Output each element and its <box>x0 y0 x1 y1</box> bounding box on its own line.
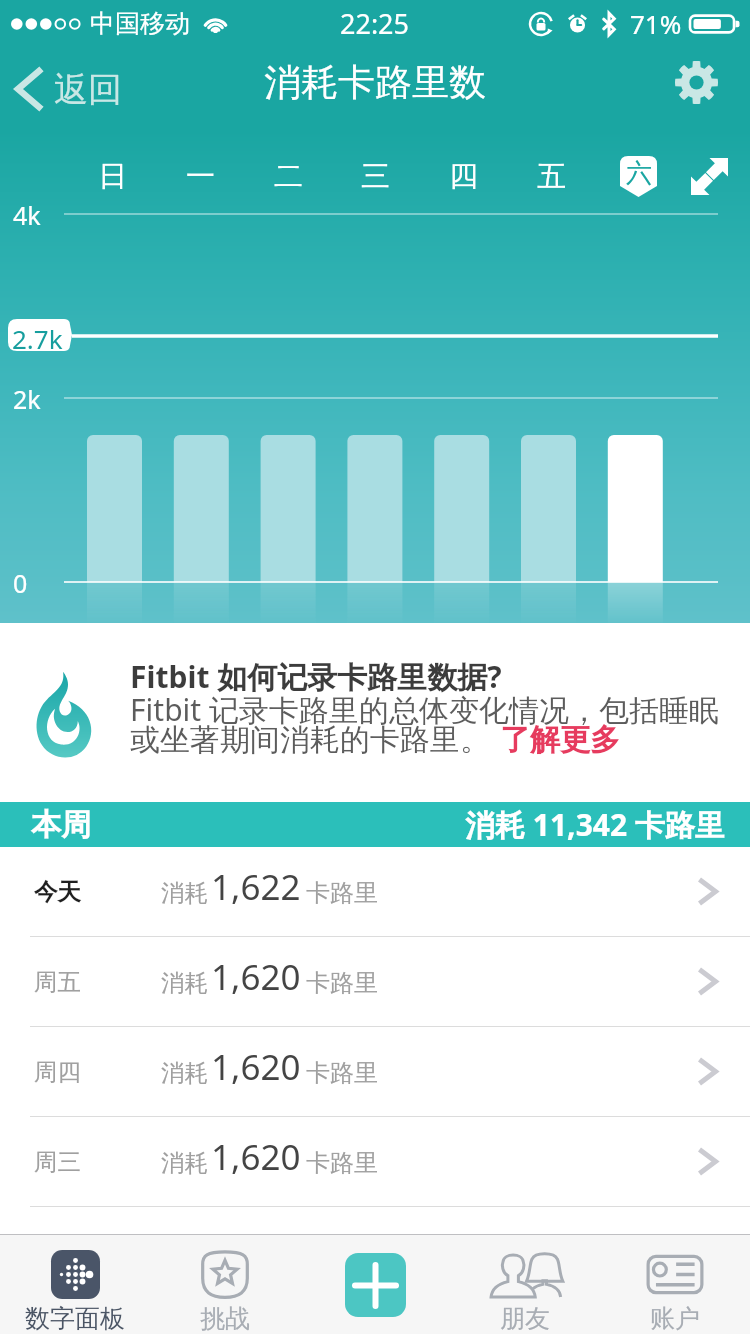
button[interactable]: 返回 <box>0 48 140 130</box>
button[interactable]: Expand chart <box>680 148 738 204</box>
staticText: 今天 <box>34 877 81 907</box>
staticText: Fitbit 如何记录卡路里数据? <box>130 656 502 697</box>
staticText: 消耗 <box>161 878 208 908</box>
staticText: 71% <box>630 6 682 41</box>
button[interactable]: 四 <box>436 155 490 197</box>
staticText: 卡路里 <box>306 968 378 998</box>
staticText: 1,620 <box>211 1043 301 1091</box>
staticText: 周五 <box>34 967 81 997</box>
button[interactable]: 朋友 <box>450 1235 600 1334</box>
button[interactable]: 周五 <box>0 937 750 1026</box>
staticText: 朋友 <box>500 1303 550 1334</box>
staticText: 周四 <box>34 1057 81 1087</box>
staticText: 1,620 <box>211 953 301 1001</box>
staticText: 0 <box>13 566 28 600</box>
staticText: 消耗 <box>161 968 208 998</box>
button[interactable]: 了解更多 <box>500 721 620 759</box>
button[interactable]: 日 <box>85 155 139 197</box>
button[interactable]: 三 <box>348 155 402 197</box>
staticText: 账户 <box>650 1303 700 1334</box>
staticText: 数字面板 <box>25 1303 125 1334</box>
button[interactable]: Add <box>300 1235 450 1334</box>
button[interactable]: 一 <box>173 155 227 197</box>
staticText: 1,622 <box>211 863 301 911</box>
staticText: 返回 <box>54 68 122 111</box>
staticText: 本周 <box>31 806 91 844</box>
staticText: 消耗 <box>161 1148 208 1178</box>
staticText: 一 <box>186 158 215 195</box>
staticText: 22:25 <box>340 5 410 42</box>
staticText: 2k <box>13 382 41 416</box>
button[interactable]: 账户 <box>600 1235 750 1334</box>
button[interactable]: 周四 <box>0 1027 750 1116</box>
staticText: 1,620 <box>211 1133 301 1181</box>
button[interactable]: 周三 <box>0 1117 750 1206</box>
staticText: 中国移动 <box>90 8 190 39</box>
button[interactable]: 五 <box>524 155 578 197</box>
staticText: Fitbit 记录卡路里的总体变化情况，包括睡眠 <box>130 689 719 730</box>
staticText: 五 <box>537 158 566 195</box>
staticText: 消耗 <box>161 1058 208 1088</box>
staticText: 卡路里 <box>306 1148 378 1178</box>
staticText: 消耗卡路里数 <box>264 59 486 106</box>
staticText: 4k <box>13 198 41 232</box>
staticText: 挑战 <box>200 1303 250 1334</box>
staticText: 周三 <box>34 1147 81 1177</box>
staticText: 卡路里 <box>306 878 378 908</box>
button[interactable]: 挑战 <box>150 1235 300 1334</box>
button[interactable]: 数字面板 <box>0 1235 150 1334</box>
button[interactable]: 二 <box>261 155 315 197</box>
staticText: 四 <box>449 158 478 195</box>
staticText: 六 <box>626 157 652 190</box>
staticText: 了解更多 <box>500 721 620 759</box>
button[interactable]: 今天 <box>0 847 750 936</box>
button[interactable]: Fitbit 如何记录卡路里数据? <box>0 623 750 802</box>
staticText: 或坐著期间消耗的卡路里。 <box>130 721 490 759</box>
staticText: 消耗 11,342 卡路里 <box>465 804 725 845</box>
staticText: 日 <box>98 158 127 195</box>
button[interactable]: 六 <box>620 156 657 197</box>
staticText: 卡路里 <box>306 1058 378 1088</box>
staticText: 2.7k <box>12 321 63 356</box>
staticText: 二 <box>274 158 303 195</box>
staticText: 三 <box>361 158 390 195</box>
button[interactable]: Settings <box>664 50 728 114</box>
